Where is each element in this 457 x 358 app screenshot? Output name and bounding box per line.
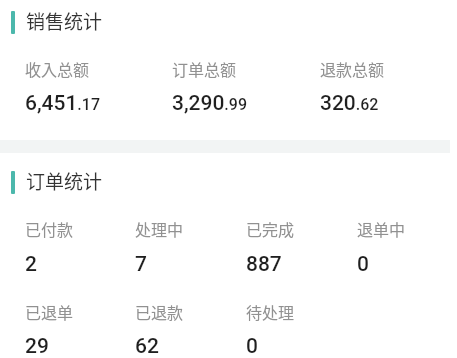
staticText: 待处理 [246, 300, 295, 323]
button[interactable]: 销售统计 [0, 7, 457, 35]
staticText: 退单中 [357, 217, 406, 240]
staticText: 62 [135, 334, 159, 358]
button[interactable]: 已付款 [0, 217, 110, 277]
staticText: 2 [25, 252, 37, 277]
staticText: 处理中 [135, 217, 184, 240]
staticText: 订单总额 [172, 57, 237, 80]
staticText: 订单统计 [26, 167, 103, 195]
staticText: 0 [246, 334, 258, 358]
button[interactable]: 处理中 [110, 217, 221, 277]
staticText: 已完成 [246, 217, 295, 240]
staticText: 退款总额 [320, 57, 385, 80]
staticText: 已退款 [135, 300, 184, 323]
staticText: 已退单 [25, 300, 74, 323]
button[interactable]: 已退款 [110, 300, 221, 358]
staticText: 887 [246, 252, 282, 277]
staticText: 0 [357, 252, 369, 277]
button[interactable]: 订单总额 [147, 57, 295, 116]
button[interactable]: 已完成 [221, 217, 332, 277]
button[interactable]: 收入总额 [0, 57, 147, 116]
staticText: 已付款 [25, 217, 74, 240]
staticText: 收入总额 [25, 57, 90, 80]
button[interactable]: 退款总额 [295, 57, 443, 116]
staticText: 320.62 [320, 91, 379, 116]
staticText: 3,290.99 [172, 91, 248, 116]
button[interactable]: 待处理 [221, 300, 332, 358]
staticText: 销售统计 [26, 7, 103, 35]
button[interactable]: 订单统计 [0, 167, 457, 195]
staticText: 29 [25, 334, 49, 358]
button[interactable]: 退单中 [332, 217, 443, 277]
staticText: 6,451.17 [25, 91, 101, 116]
staticText: 7 [135, 252, 147, 277]
button[interactable]: 已退单 [0, 300, 110, 358]
